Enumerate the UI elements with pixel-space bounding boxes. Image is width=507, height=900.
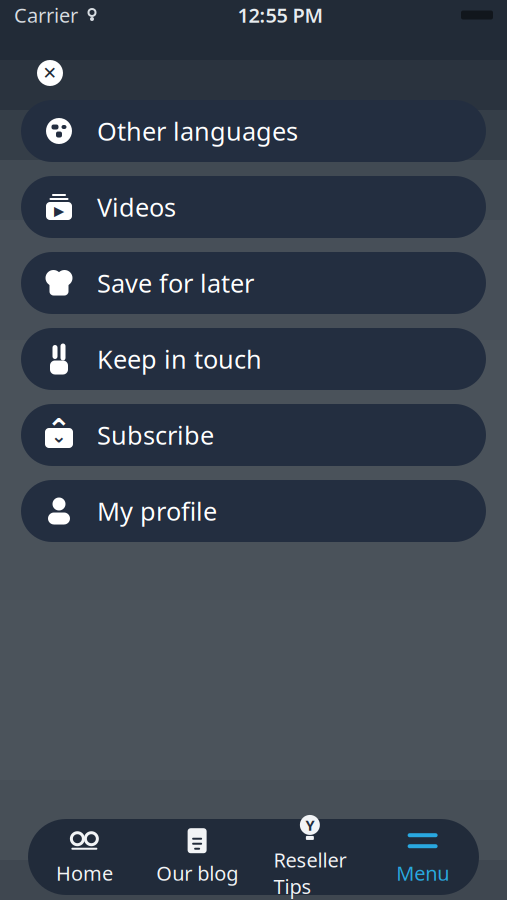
button[interactable]: ⌃ bbox=[21, 404, 486, 466]
staticText: ⌃ bbox=[46, 412, 71, 446]
staticText: Home bbox=[56, 860, 113, 886]
staticText: Other languages bbox=[97, 114, 298, 148]
staticText: 12:55 PM bbox=[237, 2, 323, 28]
staticText: Save for later bbox=[97, 266, 254, 300]
button[interactable]: Y bbox=[253, 819, 366, 895]
button[interactable]: ▶ bbox=[21, 176, 486, 238]
staticText: ▶ bbox=[54, 203, 64, 218]
button[interactable]: Close bbox=[28, 51, 72, 95]
staticText: Y bbox=[305, 815, 314, 835]
staticText: Carrier bbox=[14, 2, 78, 28]
button[interactable]: Save for later bbox=[21, 252, 486, 314]
button[interactable]: Keep in touch bbox=[21, 328, 486, 390]
staticText: Keep in touch bbox=[97, 342, 262, 376]
button[interactable]: Home bbox=[28, 819, 141, 895]
staticText: Reseller Tips bbox=[273, 846, 346, 899]
button[interactable]: Other languages bbox=[21, 100, 486, 162]
button[interactable]: My profile bbox=[21, 480, 486, 542]
staticText: Menu bbox=[396, 860, 449, 886]
button[interactable]: Our blog bbox=[141, 819, 254, 895]
staticText: Our blog bbox=[156, 860, 238, 886]
staticText: My profile bbox=[97, 494, 217, 528]
button[interactable]: Menu bbox=[366, 819, 479, 895]
staticText: Subscribe bbox=[97, 418, 214, 452]
staticText: ✕ bbox=[42, 63, 57, 83]
staticText: Videos bbox=[97, 190, 176, 224]
staticText: ⌄ bbox=[51, 425, 67, 447]
